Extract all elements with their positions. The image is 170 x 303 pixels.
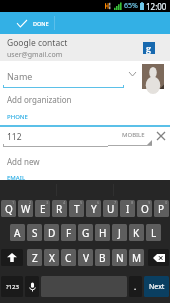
button[interactable]: J bbox=[112, 224, 127, 241]
button[interactable]: T bbox=[69, 200, 84, 217]
staticText: W bbox=[21, 202, 31, 216]
staticText: 2 bbox=[29, 200, 32, 205]
staticText: 3 bbox=[46, 200, 49, 205]
staticText: 4 bbox=[63, 200, 66, 205]
staticText: J bbox=[118, 226, 121, 240]
button[interactable]: Z bbox=[27, 249, 42, 266]
staticText: PHONE bbox=[7, 113, 28, 121]
button[interactable]: G bbox=[78, 224, 93, 241]
staticText: A bbox=[14, 226, 21, 240]
staticText: T bbox=[74, 202, 80, 216]
button[interactable]: Next bbox=[144, 276, 169, 297]
staticText: EMAIL bbox=[7, 174, 26, 182]
button[interactable]: Expand name bbox=[126, 68, 138, 80]
button[interactable]: Add new bbox=[7, 156, 40, 167]
button[interactable]: Backspace bbox=[148, 249, 169, 266]
staticText: Google contact bbox=[7, 37, 68, 49]
button[interactable]: P bbox=[154, 200, 169, 217]
button[interactable]: C bbox=[61, 249, 76, 266]
button[interactable]: M bbox=[129, 249, 144, 266]
staticText: X bbox=[49, 251, 55, 265]
button[interactable]: DONE bbox=[0, 12, 54, 34]
staticText: V bbox=[83, 251, 89, 265]
staticText: 65% bbox=[124, 1, 138, 11]
button[interactable]: Name bbox=[7, 70, 33, 82]
staticText: D bbox=[48, 226, 56, 240]
staticText: L bbox=[151, 226, 157, 240]
button[interactable]: Voice input bbox=[25, 276, 39, 297]
button[interactable]: Q bbox=[1, 200, 16, 217]
button[interactable]: Clear phone number bbox=[154, 129, 168, 143]
button[interactable]: W bbox=[18, 200, 33, 217]
staticText: Add new bbox=[7, 156, 40, 167]
button[interactable]: Contact photo bbox=[142, 64, 164, 89]
staticText: R bbox=[56, 202, 63, 216]
button[interactable]: K bbox=[129, 224, 144, 241]
staticText: F bbox=[66, 226, 72, 240]
button[interactable]: H bbox=[95, 224, 110, 241]
staticText: N bbox=[116, 251, 124, 265]
button[interactable]: Y bbox=[86, 200, 101, 217]
button[interactable]: X bbox=[44, 249, 59, 266]
staticText: E bbox=[40, 202, 46, 216]
staticText: 12:00 bbox=[146, 1, 167, 12]
staticText: Next bbox=[149, 282, 165, 292]
staticText: C bbox=[65, 251, 72, 265]
button[interactable]: I bbox=[120, 200, 135, 217]
button[interactable]: U bbox=[103, 200, 118, 217]
button[interactable]: E bbox=[35, 200, 50, 217]
button[interactable]: Shift bbox=[1, 249, 23, 266]
staticText: 5 bbox=[80, 200, 83, 205]
staticText: Name bbox=[7, 70, 33, 82]
staticText: Z bbox=[32, 251, 38, 265]
button[interactable]: D bbox=[44, 224, 59, 241]
staticText: 1 bbox=[12, 200, 15, 205]
staticText: g bbox=[146, 42, 152, 54]
button[interactable]: F bbox=[61, 224, 76, 241]
staticText: S bbox=[32, 226, 38, 240]
button[interactable]: 112 bbox=[7, 131, 22, 143]
button[interactable]: L bbox=[146, 224, 161, 241]
button[interactable]: N bbox=[112, 249, 127, 266]
button[interactable]: A bbox=[10, 224, 25, 241]
button[interactable]: V bbox=[78, 249, 93, 266]
button[interactable]: ?123 bbox=[1, 276, 23, 297]
staticText: 8 bbox=[131, 200, 134, 205]
button[interactable]: B bbox=[95, 249, 110, 266]
staticText: Y bbox=[91, 202, 97, 216]
staticText: O bbox=[141, 202, 149, 216]
button[interactable]: . bbox=[129, 276, 142, 297]
staticText: MOBILE bbox=[122, 131, 145, 139]
staticText: I bbox=[126, 202, 130, 216]
staticText: P bbox=[158, 202, 165, 216]
button[interactable]: R bbox=[52, 200, 67, 217]
staticText: B bbox=[99, 251, 106, 265]
staticText: H bbox=[99, 226, 107, 240]
staticText: M bbox=[132, 251, 142, 265]
staticText: 0 bbox=[165, 200, 168, 205]
button[interactable]: MOBILE bbox=[108, 128, 152, 146]
button[interactable]: Google account bbox=[143, 42, 155, 54]
staticText: ?123 bbox=[6, 283, 19, 291]
staticText: Add organization bbox=[7, 94, 72, 105]
staticText: DONE bbox=[33, 20, 49, 27]
staticText: . bbox=[134, 281, 137, 292]
staticText: U bbox=[107, 202, 115, 216]
button[interactable]: Add organization bbox=[7, 94, 72, 105]
staticText: user@gmail.com bbox=[7, 50, 63, 60]
staticText: 6 bbox=[97, 200, 100, 205]
button[interactable]: S bbox=[27, 224, 42, 241]
staticText: 112 bbox=[7, 131, 22, 143]
staticText: 9 bbox=[148, 200, 151, 205]
staticText: Q bbox=[5, 202, 13, 216]
staticText: 7 bbox=[114, 200, 117, 205]
staticText: K bbox=[133, 226, 140, 240]
staticText: G bbox=[82, 226, 90, 240]
button[interactable]: O bbox=[137, 200, 152, 217]
